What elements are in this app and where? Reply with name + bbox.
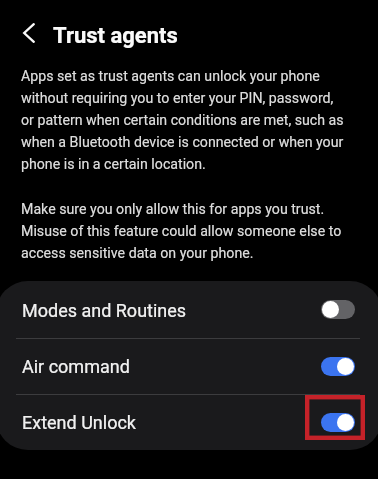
staticText: Trust agents xyxy=(53,23,178,49)
button[interactable]: Extend Unlock xyxy=(0,394,378,450)
staticText: Modes and Routines xyxy=(22,300,187,321)
button[interactable]: Modes and Routines xyxy=(0,281,378,338)
staticText: Apps set as trust agents can unlock your… xyxy=(21,64,344,174)
staticText: Air command xyxy=(22,356,130,377)
button[interactable]: Navigate up xyxy=(8,12,49,53)
button[interactable]: Extend Unlock, on xyxy=(321,413,355,432)
button[interactable]: Air command, on xyxy=(321,357,355,376)
button[interactable]: Air command xyxy=(0,338,378,394)
staticText: Extend Unlock xyxy=(22,412,136,433)
button[interactable]: Modes and Routines, off xyxy=(321,300,355,319)
staticText: Make sure you only allow this for apps y… xyxy=(21,197,342,263)
